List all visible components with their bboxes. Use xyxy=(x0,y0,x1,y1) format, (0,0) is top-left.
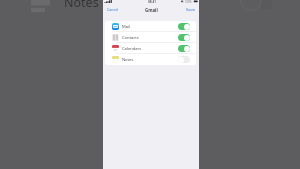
staticText: Contacts xyxy=(122,35,139,41)
staticText: Save xyxy=(186,7,196,13)
staticText: Gmail xyxy=(145,7,158,13)
button[interactable]: Notes toggle xyxy=(178,56,190,63)
button[interactable]: Contacts toggle xyxy=(178,34,190,41)
staticText: 08:41 xyxy=(148,0,156,4)
staticText: Notes xyxy=(64,0,99,11)
staticText: 100% xyxy=(185,0,192,4)
staticText: Notes xyxy=(122,57,134,63)
button[interactable]: Notes xyxy=(105,54,196,65)
staticText: Calendars xyxy=(122,46,142,52)
button[interactable]: Save xyxy=(184,6,198,14)
staticText: Cancel xyxy=(107,7,119,12)
button[interactable]: Mail toggle xyxy=(178,23,190,30)
button[interactable]: Calendars toggle xyxy=(178,45,190,52)
staticText: Mail xyxy=(122,24,131,30)
button[interactable]: Cancel xyxy=(105,6,121,13)
button[interactable]: Calendars xyxy=(105,43,196,54)
button[interactable]: Mail xyxy=(105,21,196,32)
button[interactable]: Contacts xyxy=(105,32,196,43)
